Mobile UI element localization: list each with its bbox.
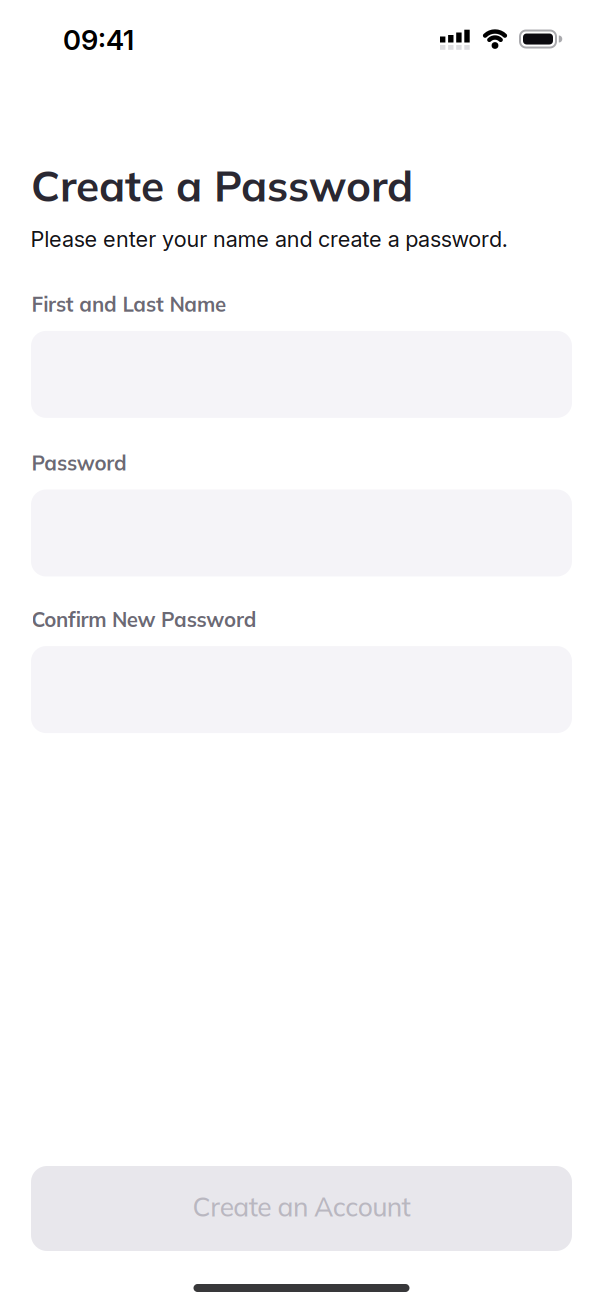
staticText: Please enter your name and create a pass… <box>30 226 508 252</box>
staticText: Create a Password <box>31 159 413 212</box>
button[interactable]: Create an Account <box>31 1166 572 1251</box>
staticText: Create an Account <box>193 1190 410 1223</box>
staticText: 09:41 <box>63 23 134 57</box>
staticText: First and Last Name <box>31 291 226 317</box>
staticText: Password <box>31 450 127 475</box>
staticText: Confirm New Password <box>31 606 257 632</box>
